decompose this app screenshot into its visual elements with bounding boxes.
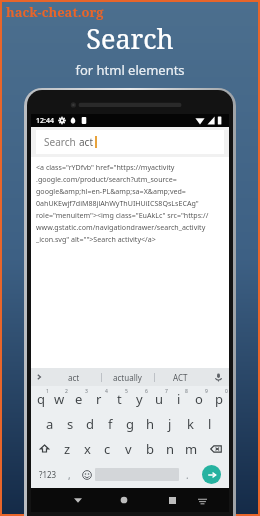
button[interactable]: Emoji <box>78 461 95 488</box>
staticText: role="menuitem"><img class="EuAkLc" src=… <box>36 210 209 220</box>
staticText: r <box>96 390 102 408</box>
button[interactable]: Backspace <box>202 436 229 461</box>
staticText: 4 <box>105 388 108 395</box>
staticText: 5 <box>125 388 128 395</box>
button[interactable]: l <box>200 411 220 436</box>
staticText: v <box>125 440 132 458</box>
staticText: Search <box>86 20 174 57</box>
staticText: Search <box>44 135 79 149</box>
button[interactable]: . <box>179 461 196 488</box>
staticText: 2 <box>65 388 68 395</box>
staticText: 8 <box>185 388 188 395</box>
staticText: 1 <box>46 388 49 395</box>
staticText: n <box>166 440 175 458</box>
button[interactable]: Shift <box>31 436 57 461</box>
staticText: hack-cheat.org <box>6 3 104 21</box>
button[interactable]: Back <box>63 488 92 512</box>
staticText: s <box>67 415 74 433</box>
button[interactable]: w <box>50 386 69 411</box>
staticText: e <box>75 390 83 408</box>
button[interactable]: s <box>60 411 80 436</box>
staticText: _icon.svg" alt="">Search activity</a> <box>36 234 156 244</box>
staticText: ?123 <box>39 469 57 480</box>
staticText: .google.com/product/search?utm_source= <box>36 174 177 184</box>
staticText: 6 <box>145 388 148 395</box>
staticText: www.gstatic.com/navigationdrawer/search_… <box>36 222 206 232</box>
staticText: y <box>136 390 143 408</box>
staticText: 0 <box>225 388 228 395</box>
staticText: <a class="rYDfvb" href="https://myactivi… <box>36 162 175 172</box>
button[interactable]: m <box>181 436 202 461</box>
staticText: q <box>37 390 45 408</box>
button[interactable]: o <box>189 386 209 411</box>
staticText: u <box>155 390 164 408</box>
button[interactable]: Keyboard layout <box>187 488 217 512</box>
button[interactable]: Go <box>196 461 226 488</box>
staticText: l <box>208 415 212 433</box>
button[interactable]: x <box>77 436 97 461</box>
button[interactable]: g <box>120 411 140 436</box>
staticText: m <box>185 440 198 458</box>
staticText: 7 <box>165 388 168 395</box>
staticText: actually <box>113 372 142 383</box>
staticText: act <box>68 372 80 383</box>
staticText: b <box>146 440 154 458</box>
staticText: , <box>68 468 71 482</box>
button[interactable]: i <box>169 386 189 411</box>
staticText: 0ahUKEwjf7diM88jlAhWyThUIHUiICS8QsLsECAg… <box>36 198 199 208</box>
button[interactable]: z <box>57 436 77 461</box>
button[interactable]: ?123 <box>34 461 61 488</box>
staticText: google&amp;hl=en-PL&amp;sa=X&amp;ved= <box>36 186 186 196</box>
staticText: t <box>117 390 122 408</box>
staticText: for html elements <box>75 61 185 79</box>
staticText: g <box>126 415 134 433</box>
button[interactable]: p <box>209 386 229 411</box>
button[interactable]: v <box>118 436 139 461</box>
button[interactable]: , <box>61 461 78 488</box>
staticText: ACT <box>173 372 188 383</box>
staticText: w <box>54 390 65 408</box>
button[interactable]: Search <box>36 130 224 154</box>
button[interactable]: e <box>69 386 89 411</box>
staticText: k <box>187 415 194 433</box>
staticText: c <box>104 440 111 458</box>
staticText: j <box>168 415 172 433</box>
button[interactable]: ACT <box>154 368 207 386</box>
staticText: h <box>146 415 155 433</box>
button[interactable]: Expand suggestions <box>31 368 47 386</box>
button[interactable]: d <box>80 411 100 436</box>
button[interactable]: act <box>47 368 101 386</box>
button[interactable]: f <box>100 411 120 436</box>
staticText: p <box>215 390 223 408</box>
button[interactable]: r <box>89 386 109 411</box>
button[interactable]: u <box>149 386 169 411</box>
button[interactable]: b <box>139 436 160 461</box>
button[interactable]: k <box>180 411 200 436</box>
button[interactable]: n <box>160 436 181 461</box>
staticText: d <box>86 415 94 433</box>
button[interactable]: t <box>109 386 129 411</box>
button[interactable]: j <box>160 411 180 436</box>
staticText: o <box>195 390 203 408</box>
staticText: x <box>84 440 91 458</box>
staticText: f <box>108 415 113 433</box>
button[interactable]: c <box>97 436 118 461</box>
button[interactable]: q <box>31 386 50 411</box>
button[interactable]: actually <box>101 368 154 386</box>
staticText: 12:44 <box>36 116 54 126</box>
staticText: i <box>177 390 181 408</box>
staticText: 9 <box>205 388 208 395</box>
button[interactable]: Voice input <box>207 368 229 386</box>
staticText: 3 <box>85 388 88 395</box>
button[interactable]: y <box>129 386 149 411</box>
staticText: z <box>64 440 71 458</box>
staticText: act <box>79 135 94 149</box>
button[interactable]: Recent apps <box>157 488 187 512</box>
staticText: a <box>46 415 54 433</box>
button[interactable]: h <box>140 411 160 436</box>
button[interactable]: Home <box>109 488 139 512</box>
staticText: . <box>186 468 189 482</box>
button[interactable]: a <box>40 411 60 436</box>
